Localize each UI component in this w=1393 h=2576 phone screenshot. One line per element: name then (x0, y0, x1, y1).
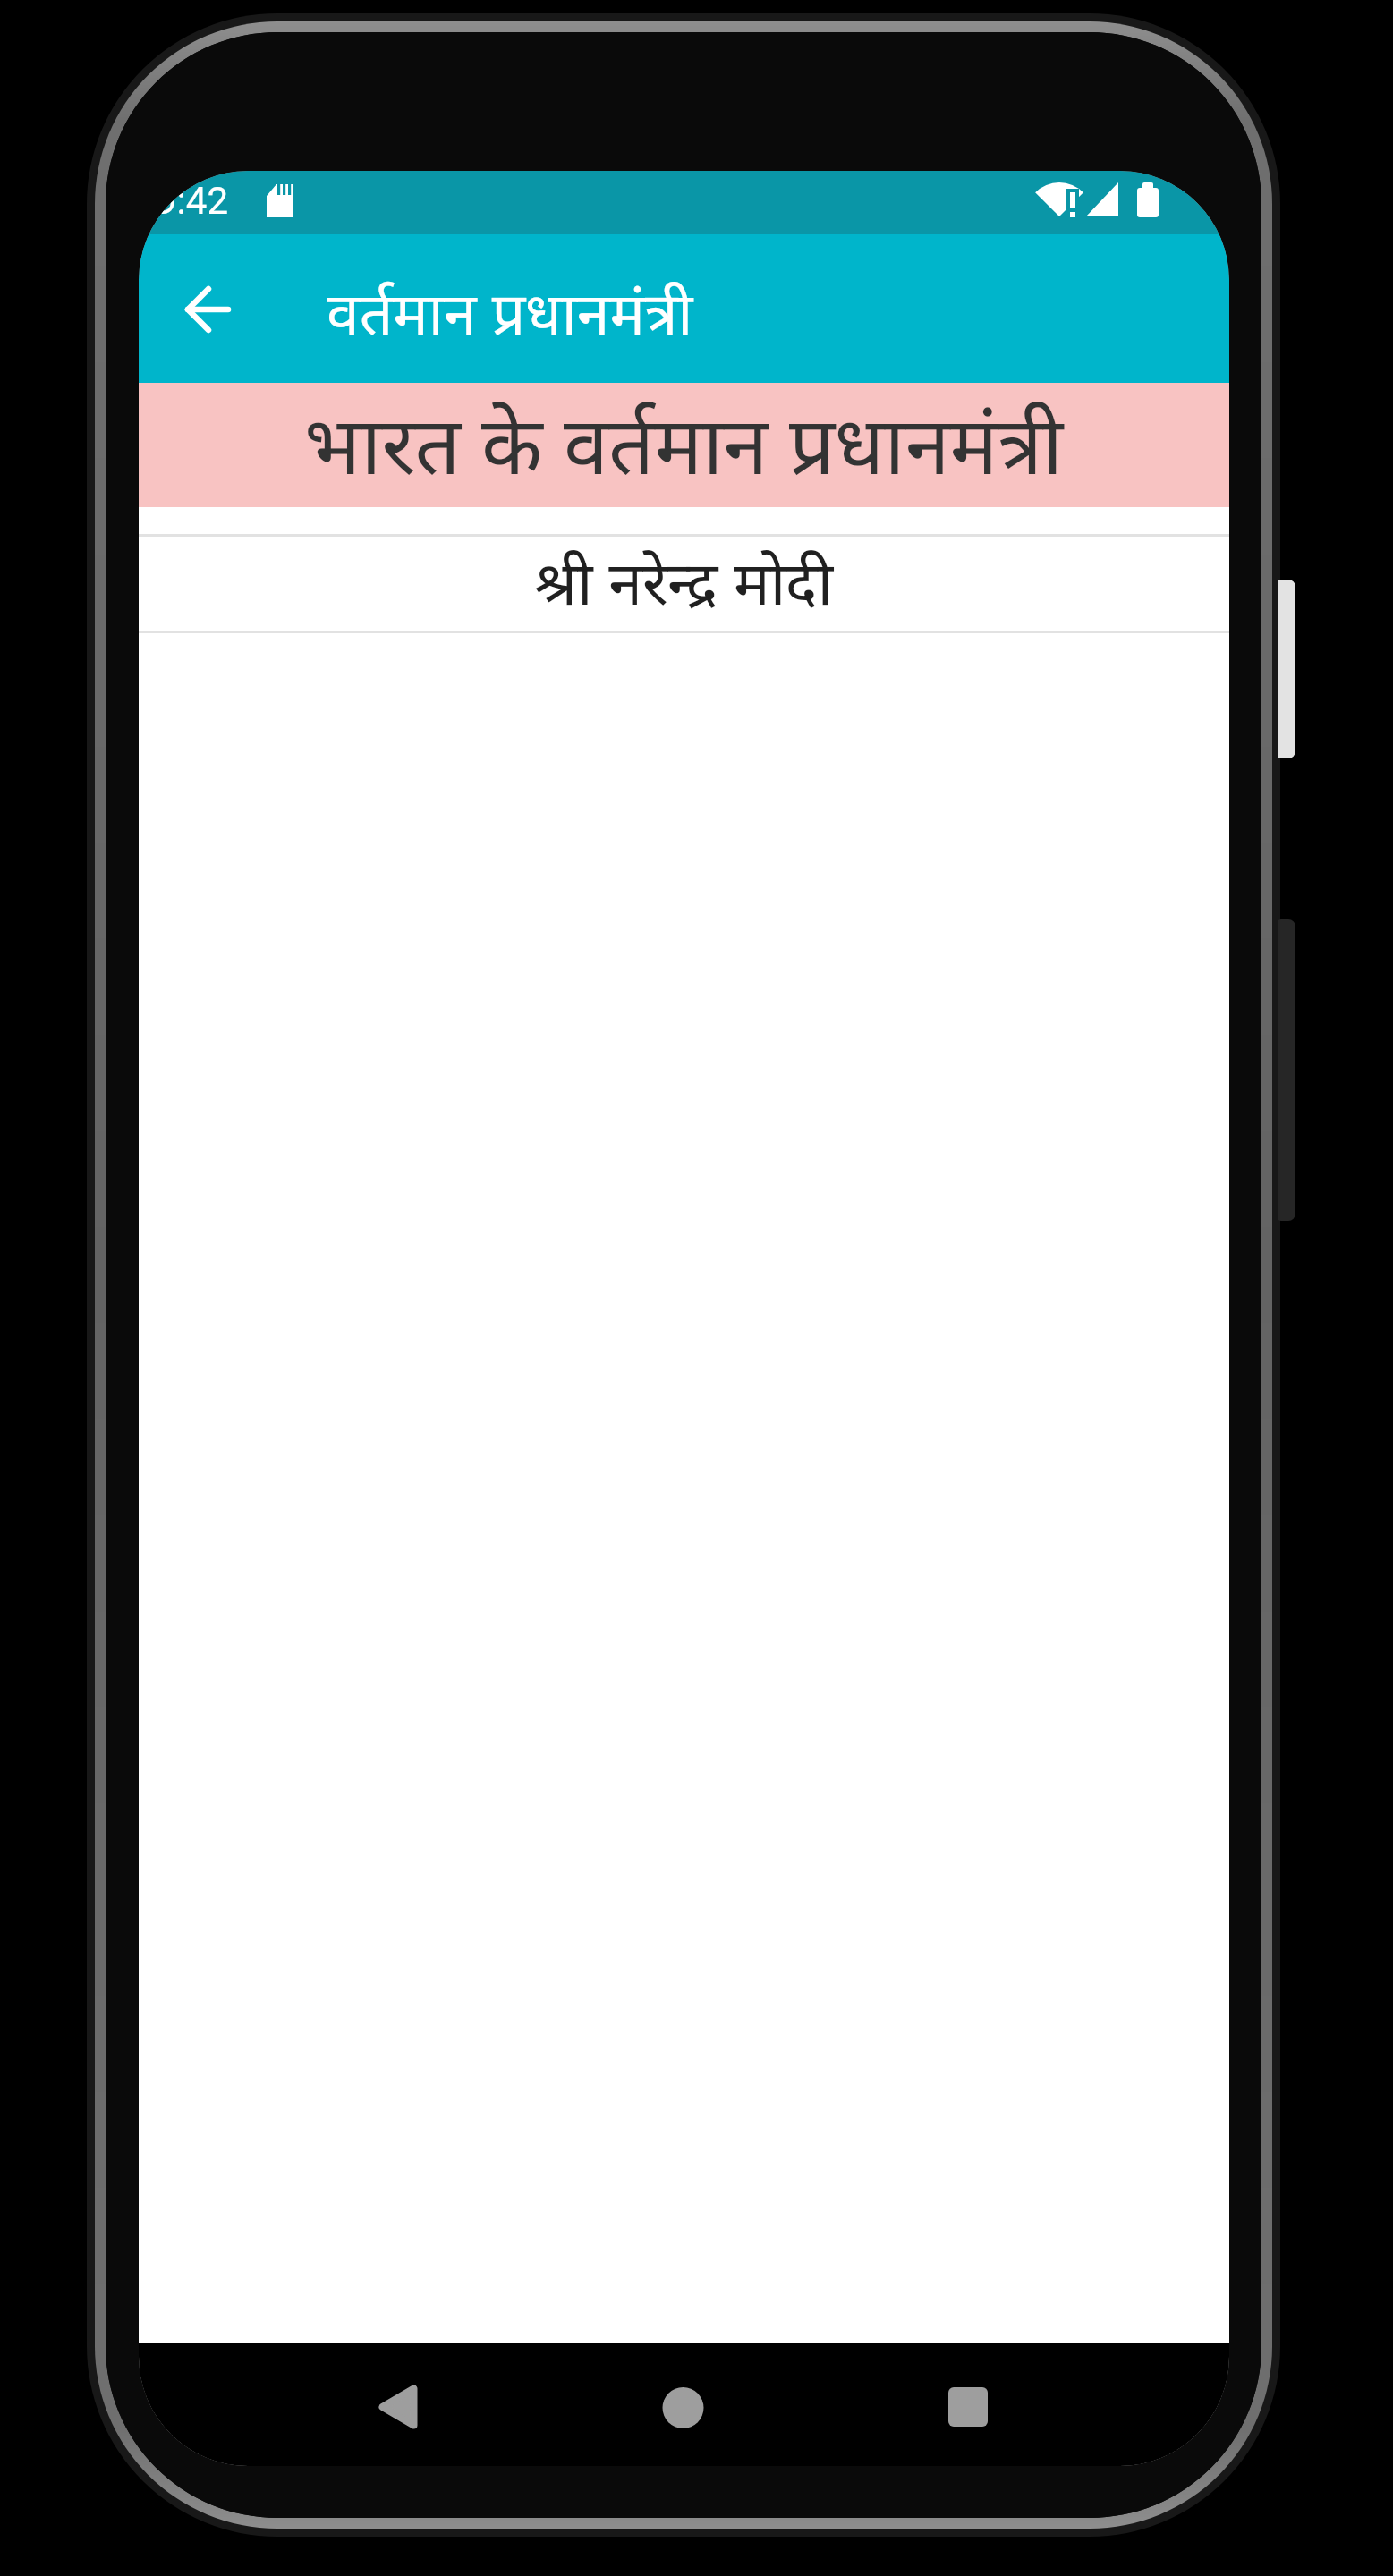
button[interactable] (139, 2343, 503, 2466)
button[interactable] (866, 2343, 1229, 2466)
button[interactable]: श्री नरेन्द्र मोदी (139, 537, 1229, 631)
button[interactable] (158, 259, 259, 360)
staticText: 9:42 (156, 179, 228, 223)
staticText: वर्तमान प्रधानमंत्री (327, 271, 693, 352)
staticText: भारत के वर्तमान प्रधानमंत्री (304, 388, 1064, 498)
button[interactable] (503, 2343, 866, 2466)
staticText: श्री नरेन्द्र मोदी (534, 539, 834, 623)
